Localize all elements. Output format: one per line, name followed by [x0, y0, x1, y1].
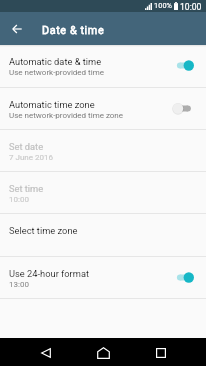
staticText: Set date — [9, 141, 44, 152]
staticText: 10:00 — [9, 195, 29, 204]
button[interactable]: Navigate up — [6, 18, 27, 39]
staticText: Automatic date & time — [9, 56, 102, 67]
staticText: Use 24-hour format — [9, 268, 90, 279]
staticText: Use network-provided time zone — [9, 111, 124, 120]
staticText: Select time zone — [9, 225, 78, 236]
staticText: Date & time — [42, 24, 105, 37]
staticText: Use network-provided time — [9, 68, 104, 77]
button[interactable]: Home — [93, 343, 113, 363]
button[interactable]: Off — [173, 103, 194, 114]
button[interactable]: Automatic time zone — [0, 88, 206, 130]
button[interactable]: Automatic date & time — [0, 45, 206, 88]
button[interactable]: On — [173, 272, 194, 283]
button[interactable]: Back — [36, 343, 56, 363]
button[interactable]: On — [173, 60, 194, 71]
staticText: 10:00 — [180, 2, 202, 12]
staticText: 13:00 — [9, 280, 29, 289]
button[interactable]: Set date — [0, 130, 206, 172]
button[interactable]: Use 24-hour format — [0, 257, 206, 299]
button[interactable]: Select time zone — [0, 214, 206, 257]
button[interactable]: Set time — [0, 172, 206, 214]
button[interactable]: Recent apps — [151, 343, 171, 363]
staticText: 7 June 2016 — [9, 153, 53, 162]
staticText: Set time — [9, 183, 44, 194]
staticText: 100% — [154, 1, 173, 10]
staticText: Automatic time zone — [9, 99, 95, 110]
